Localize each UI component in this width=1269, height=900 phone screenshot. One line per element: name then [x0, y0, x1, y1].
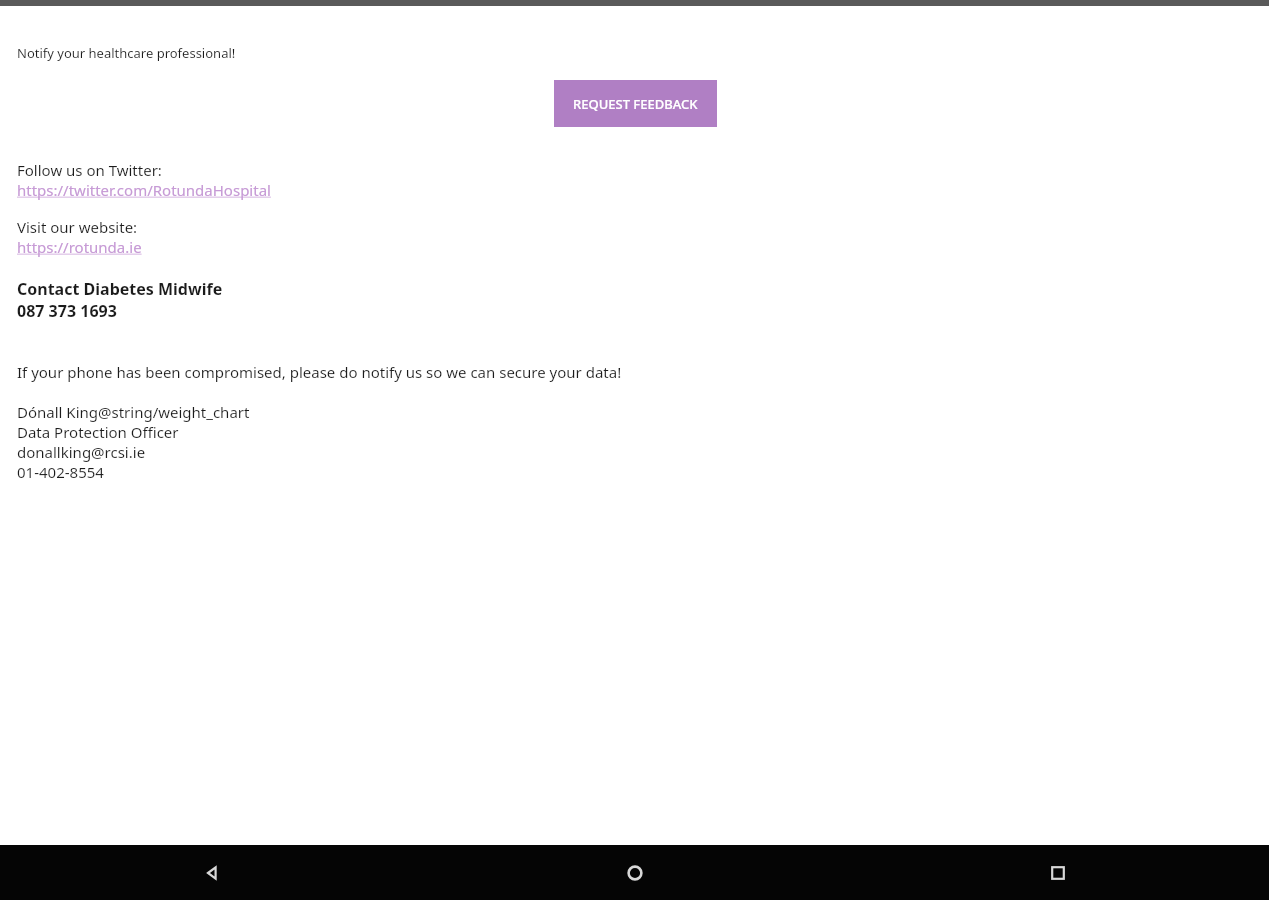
staticText: If your phone has been compromised, plea…	[17, 362, 622, 382]
button[interactable]: https://rotunda.ie	[17, 237, 142, 257]
button[interactable]: Recent apps	[846, 845, 1269, 900]
staticText: Visit our website:	[17, 217, 138, 237]
button[interactable]: https://twitter.com/RotundaHospital	[17, 180, 271, 200]
staticText: https://twitter.com/RotundaHospital	[17, 180, 271, 200]
staticText: https://rotunda.ie	[17, 237, 142, 257]
staticText: REQUEST FEEDBACK	[573, 95, 698, 113]
button[interactable]: Home	[423, 845, 846, 900]
button[interactable]: Back	[0, 845, 423, 900]
staticText: 01-402-8554	[17, 462, 104, 482]
staticText: Contact Diabetes Midwife	[17, 278, 223, 300]
staticText: Notify your healthcare professional!	[17, 44, 236, 62]
staticText: donallking@rcsi.ie	[17, 442, 146, 462]
staticText: 087 373 1693	[17, 300, 117, 322]
button[interactable]: REQUEST FEEDBACK	[554, 80, 717, 127]
staticText: Follow us on Twitter:	[17, 160, 162, 180]
staticText: Data Protection Officer	[17, 422, 179, 442]
staticText: Dónall King@string/weight_chart	[17, 402, 250, 422]
